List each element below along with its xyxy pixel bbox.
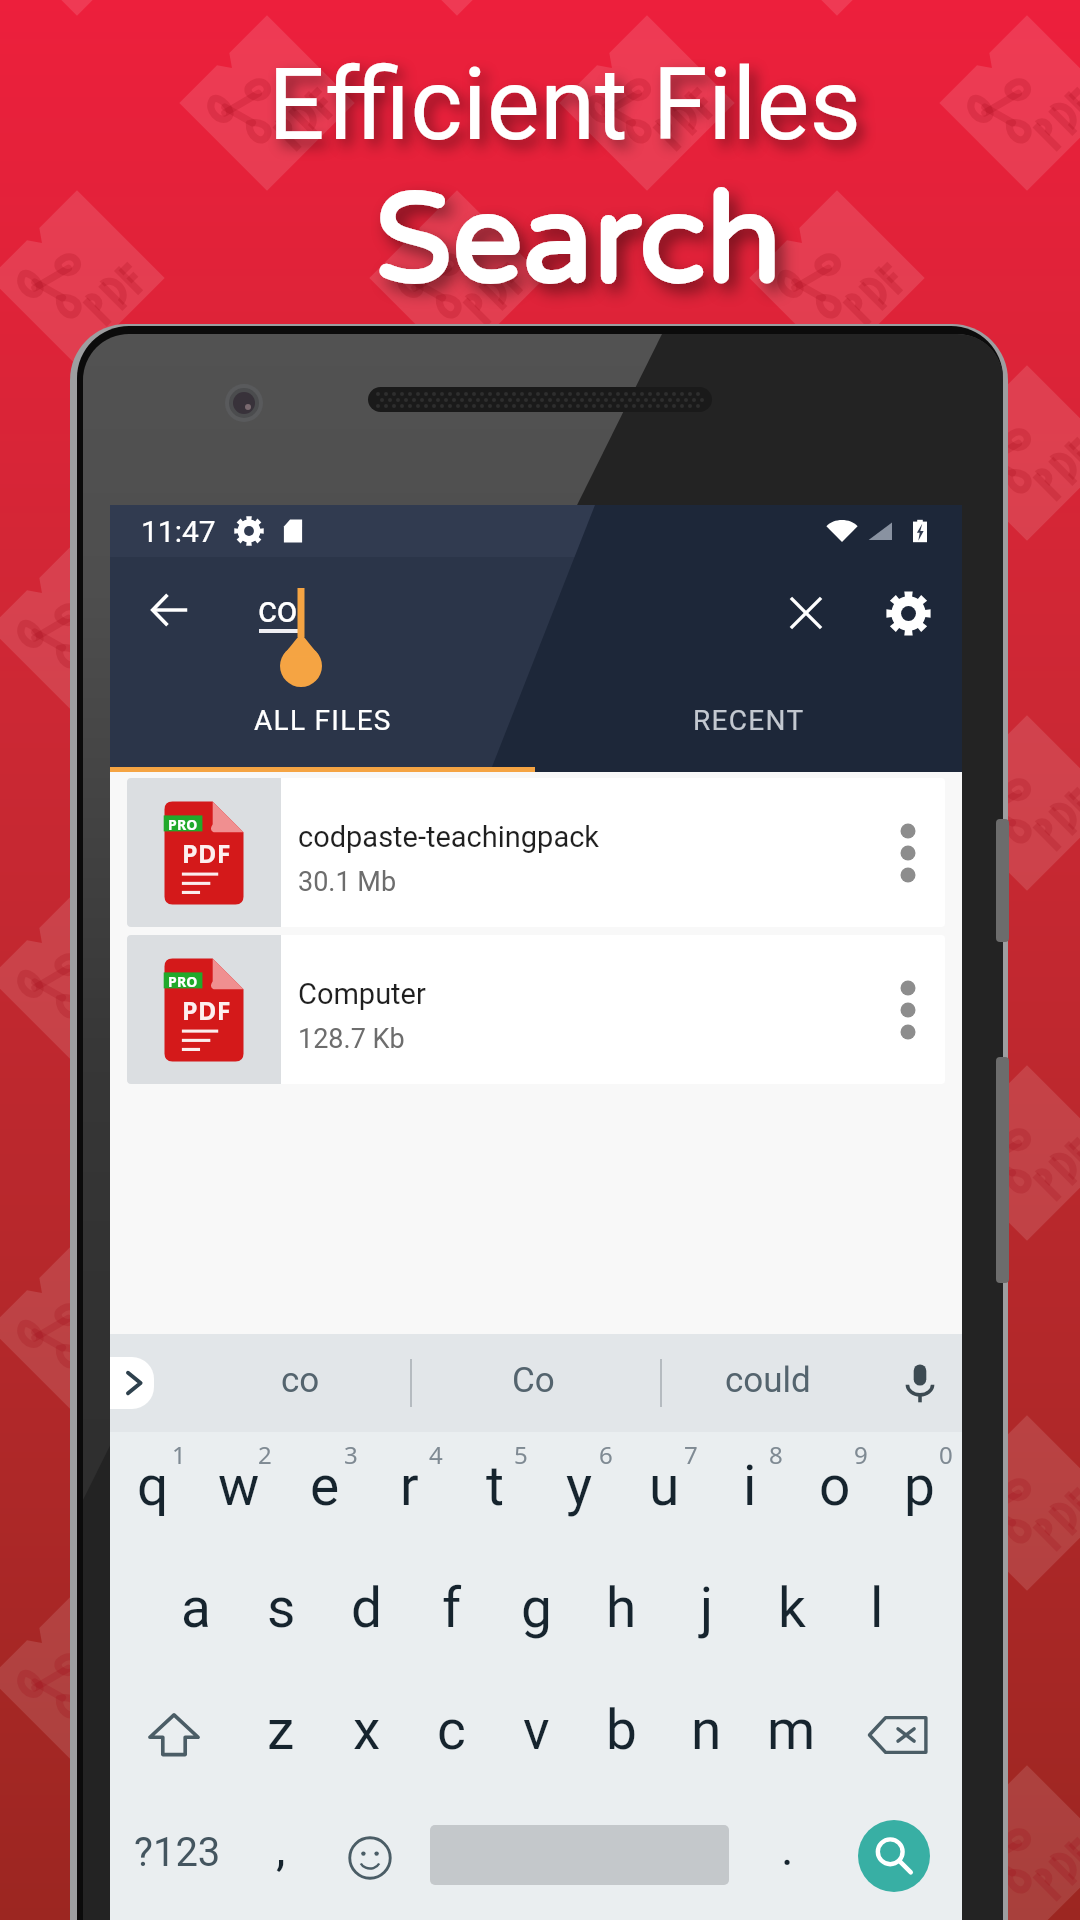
button[interactable]: b <box>579 1674 664 1796</box>
staticText: q <box>137 1454 169 1518</box>
staticText: c <box>437 1698 466 1762</box>
button[interactable]: g <box>494 1552 579 1674</box>
staticText: 2 <box>258 1438 272 1471</box>
staticText: Efficient Files <box>268 46 862 163</box>
staticText: PDF <box>182 836 231 870</box>
staticText: h <box>606 1576 637 1640</box>
button[interactable]: v <box>494 1674 579 1796</box>
button[interactable]: PRO <box>127 935 945 1084</box>
button[interactable]: Shift <box>110 1674 238 1796</box>
button[interactable]: a <box>153 1552 239 1674</box>
staticText: m <box>767 1698 816 1762</box>
staticText: 30.1 Mb <box>298 866 397 898</box>
staticText: RECENT <box>693 704 805 737</box>
button[interactable]: Settings <box>872 577 944 649</box>
staticText: PRO <box>168 972 198 991</box>
staticText: n <box>691 1698 722 1762</box>
staticText: ?123 <box>134 1829 221 1876</box>
staticText: 128.7 Kb <box>298 1023 405 1055</box>
staticText: Co <box>512 1360 555 1401</box>
button[interactable]: 2 <box>196 1432 282 1552</box>
button[interactable]: l <box>834 1552 919 1674</box>
staticText: l <box>870 1576 884 1640</box>
button[interactable]: Co <box>425 1334 641 1432</box>
button[interactable]: co <box>192 1334 408 1432</box>
button[interactable]: x <box>324 1674 409 1796</box>
button[interactable]: ?123 <box>115 1796 239 1920</box>
staticText: could <box>725 1360 811 1401</box>
button[interactable]: RECENT <box>536 669 962 772</box>
button[interactable]: 4 <box>367 1432 452 1552</box>
staticText: . <box>781 1820 794 1876</box>
staticText: r <box>400 1454 419 1518</box>
button[interactable]: c <box>409 1674 494 1796</box>
button[interactable]: Voice input <box>878 1334 962 1432</box>
button[interactable]: Expand suggestions <box>110 1357 154 1409</box>
staticText: 3 <box>344 1438 358 1471</box>
staticText: w <box>218 1454 260 1518</box>
staticText: 6 <box>599 1438 613 1471</box>
button[interactable]: 1 <box>110 1432 196 1552</box>
staticText: 1 <box>172 1438 186 1471</box>
button[interactable]: Space <box>419 1796 739 1920</box>
button[interactable]: 3 <box>282 1432 367 1552</box>
button[interactable]: could <box>660 1334 876 1432</box>
button[interactable]: More options <box>871 935 945 1084</box>
button[interactable]: PRO <box>127 778 945 927</box>
staticText: x <box>353 1698 381 1762</box>
staticText: 0 <box>939 1438 953 1471</box>
staticText: PRO <box>168 815 198 834</box>
button[interactable]: Emoji <box>321 1796 419 1920</box>
button[interactable]: ALL FILES <box>110 669 536 772</box>
staticText: co <box>258 589 298 631</box>
staticText: , <box>276 1820 286 1876</box>
button[interactable]: j <box>664 1552 749 1674</box>
button[interactable]: s <box>239 1552 324 1674</box>
button[interactable]: 8 <box>707 1432 792 1552</box>
staticText: 5 <box>514 1438 528 1471</box>
staticText: j <box>700 1576 714 1640</box>
button[interactable]: Backspace <box>834 1674 962 1796</box>
button[interactable]: m <box>749 1674 834 1796</box>
button[interactable]: . <box>736 1796 838 1920</box>
button[interactable]: More options <box>871 778 945 927</box>
staticText: i <box>743 1454 757 1518</box>
button[interactable]: 6 <box>537 1432 622 1552</box>
button[interactable]: Back <box>135 576 203 644</box>
button[interactable]: 0 <box>877 1432 962 1552</box>
staticText: v <box>523 1698 550 1762</box>
button[interactable]: 7 <box>622 1432 707 1552</box>
button[interactable]: 5 <box>452 1432 537 1552</box>
staticText: co <box>281 1360 320 1401</box>
button[interactable]: n <box>664 1674 749 1796</box>
staticText: s <box>267 1576 296 1640</box>
staticText: g <box>521 1576 552 1640</box>
staticText: t <box>486 1454 504 1518</box>
staticText: Computer <box>298 977 426 1011</box>
staticText: f <box>442 1576 462 1640</box>
button[interactable]: 9 <box>792 1432 877 1552</box>
button[interactable]: d <box>324 1552 409 1674</box>
staticText: p <box>904 1454 935 1518</box>
button[interactable]: Search <box>838 1796 950 1920</box>
button[interactable]: h <box>579 1552 664 1674</box>
button[interactable]: f <box>409 1552 494 1674</box>
staticText: e <box>310 1454 340 1518</box>
staticText: codpaste-teachingpack <box>298 820 600 854</box>
staticText: b <box>606 1698 637 1762</box>
staticText: y <box>566 1454 593 1518</box>
staticText: o <box>819 1454 851 1518</box>
button[interactable]: k <box>749 1552 834 1674</box>
staticText: a <box>181 1576 211 1640</box>
staticText: 7 <box>684 1438 698 1471</box>
staticText: 11:47 <box>141 514 216 549</box>
staticText: 9 <box>854 1438 868 1471</box>
button[interactable]: Clear search <box>770 577 842 649</box>
button[interactable]: , <box>228 1796 334 1920</box>
button[interactable]: co <box>250 557 450 669</box>
staticText: u <box>649 1454 680 1518</box>
staticText: 4 <box>429 1438 443 1471</box>
staticText: ALL FILES <box>254 704 392 737</box>
staticText: 8 <box>769 1438 783 1471</box>
button[interactable]: z <box>238 1674 324 1796</box>
